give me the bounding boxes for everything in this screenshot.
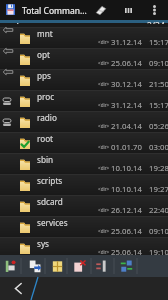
staticText: opt (37, 49, 50, 60)
staticText: pps (37, 70, 51, 81)
button[interactable]: Scripts (0, 255, 22, 277)
button[interactable]: Edit (89, 0, 113, 20)
staticText: radio (37, 112, 57, 123)
button[interactable]: scripts (0, 174, 168, 195)
staticText: 25.06.14 (111, 247, 142, 255)
staticText: 25.06.14 (111, 226, 142, 237)
staticText: proc (37, 91, 55, 102)
staticText: <dir> (98, 123, 110, 129)
button[interactable]: radio (0, 111, 168, 132)
staticText: sbin (37, 154, 54, 165)
staticText: 03:00 (149, 142, 168, 153)
staticText: <dir> (98, 165, 110, 171)
button[interactable]: Delete (68, 255, 90, 277)
staticText: <dir> (98, 81, 110, 87)
staticText: / (15, 20, 19, 24)
staticText: 2/34 (147, 20, 165, 24)
staticText: root (37, 133, 54, 144)
staticText: 21:50 (149, 79, 168, 90)
staticText: <dir> (98, 186, 110, 192)
staticText: 31.12.14 (111, 37, 142, 48)
button[interactable]: proc (0, 90, 168, 111)
button[interactable]: Back (0, 277, 36, 300)
staticText: 25.06.14 (111, 58, 142, 69)
staticText: 19:28 (149, 163, 168, 174)
button[interactable]: Select (115, 255, 137, 277)
staticText: 05:26 (149, 121, 168, 132)
button[interactable]: sdcard (0, 195, 168, 216)
button[interactable]: services (0, 216, 168, 237)
staticText: <dir> (98, 207, 110, 213)
staticText: sys (37, 238, 50, 249)
staticText: <dir> (98, 60, 110, 66)
staticText: 09:10 (149, 58, 168, 69)
staticText: 30.12.14 (111, 79, 142, 90)
staticText: scripts (37, 175, 63, 186)
staticText: 09:10 (149, 226, 168, 237)
staticText: services (37, 217, 68, 228)
staticText: 10.10.14 (111, 184, 142, 195)
button[interactable]: sbin (0, 153, 168, 174)
staticText: 22:40 (149, 205, 168, 216)
button[interactable]: sys (0, 237, 168, 255)
button[interactable]: root (0, 132, 168, 153)
staticText: <dir> (98, 249, 110, 255)
staticText: sdcard (37, 196, 63, 207)
staticText: 10.10.14 (111, 163, 142, 174)
button[interactable]: Rename (91, 255, 113, 277)
button[interactable]: opt (0, 48, 168, 69)
staticText: Total Comman... (22, 5, 87, 17)
staticText: 31.12.14 (111, 100, 142, 111)
button[interactable]: Copy (24, 255, 46, 277)
button[interactable]: pps (0, 69, 168, 90)
button[interactable]: More options (144, 0, 164, 20)
staticText: 01.01.70 (111, 142, 142, 153)
staticText: 21.04.14 (111, 121, 142, 132)
staticText: mnt (37, 28, 53, 39)
button[interactable]: Tabs (117, 0, 139, 20)
staticText: 26.12.14 (111, 205, 142, 216)
staticText: <dir> (98, 39, 110, 45)
staticText: 19:10 (149, 247, 168, 255)
button[interactable]: Windows (46, 255, 68, 277)
staticText: <dir> (98, 102, 110, 108)
button[interactable]: mnt (0, 27, 168, 48)
staticText: 15:17 (149, 37, 168, 48)
staticText: 15:17 (149, 100, 168, 111)
staticText: 19:27 (149, 184, 168, 195)
staticText: <dir> (98, 144, 110, 150)
staticText: <dir> (98, 228, 110, 234)
